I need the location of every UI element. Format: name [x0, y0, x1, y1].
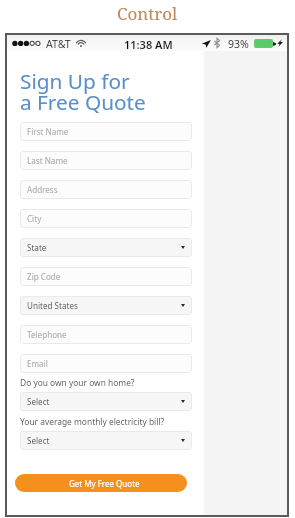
staticText: Email — [27, 358, 48, 369]
staticText: Your average monthly electricity bill? — [20, 416, 165, 427]
staticText: 11:38 AM — [124, 37, 173, 52]
staticText: Select — [27, 435, 50, 446]
other: Bluetooth — [214, 38, 220, 48]
staticText: Control — [117, 2, 178, 25]
button[interactable]: Last Name — [20, 151, 192, 170]
button[interactable]: Email — [20, 354, 192, 373]
other: Location — [201, 39, 211, 48]
staticText: Get My Free Quote — [69, 478, 140, 489]
other: Charging — [277, 39, 283, 47]
button[interactable]: City — [20, 209, 192, 228]
staticText: United States — [27, 300, 78, 311]
staticText: Sign Up for a Free Quote — [20, 67, 146, 116]
staticText: Zip Code — [27, 271, 61, 282]
button[interactable]: Select — [20, 392, 192, 411]
staticText: Select — [27, 396, 50, 407]
button[interactable]: Address — [20, 180, 192, 199]
button[interactable]: State — [20, 238, 192, 257]
staticText: State — [27, 242, 47, 253]
staticText: First Name — [27, 126, 69, 137]
button[interactable]: Telephone — [20, 325, 192, 344]
button[interactable]: Select — [20, 431, 192, 450]
button[interactable]: Zip Code — [20, 267, 192, 286]
staticText: Last Name — [27, 155, 68, 166]
staticText: City — [27, 213, 42, 224]
button[interactable]: United States — [20, 296, 192, 315]
staticText: Telephone — [27, 329, 67, 340]
staticText: 93% — [228, 37, 249, 51]
staticText: Address — [27, 184, 58, 195]
button[interactable]: First Name — [20, 122, 192, 141]
other: Wifi — [76, 39, 86, 47]
staticText: AT&T — [46, 37, 71, 51]
staticText: Do you own your own home? — [20, 377, 135, 388]
button[interactable]: Get My Free Quote — [15, 474, 187, 492]
